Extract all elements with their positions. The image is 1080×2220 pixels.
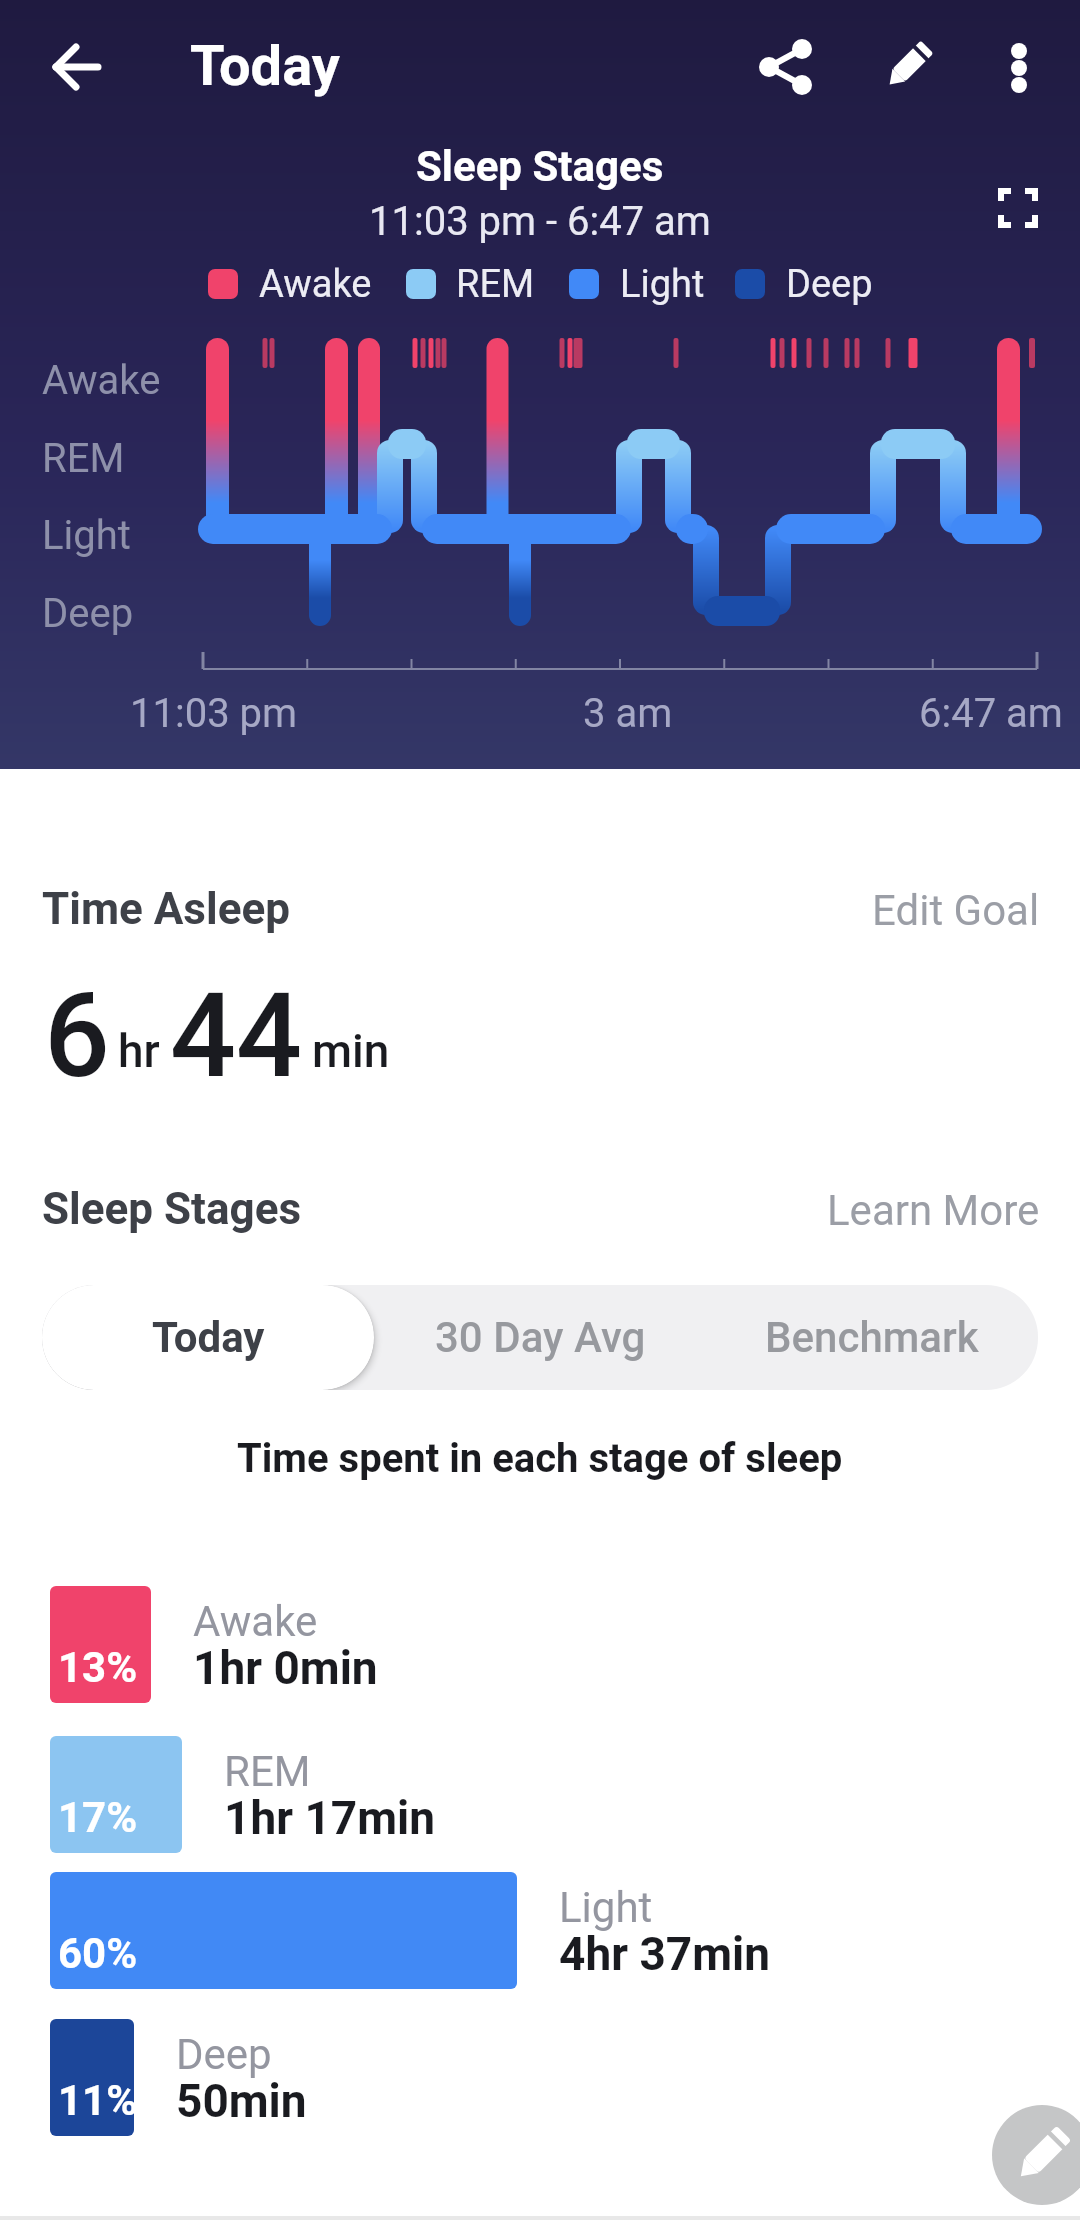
button[interactable] [990,40,1046,96]
staticText: Today [152,1313,265,1362]
staticText: 1hr 0min [193,1641,378,1695]
button[interactable]: 30 Day Avg [374,1285,706,1390]
button[interactable] [40,40,96,96]
staticText: REM [456,262,535,307]
staticText: Time Asleep [42,883,290,935]
button[interactable]: Edit Goal [760,880,1040,940]
staticText: Awake [259,262,372,307]
staticText: min [312,1024,390,1078]
staticText: 11:03 pm - 6:47 am [369,198,711,245]
staticText: 50min [176,2074,307,2128]
staticText: 17% [58,1793,138,1842]
staticText: Light [42,512,131,559]
staticText: REM [224,1747,311,1796]
staticText: 60% [58,1929,138,1978]
staticText: Benchmark [765,1313,979,1362]
staticText: Learn More [827,1186,1040,1235]
staticText: 13% [58,1643,138,1692]
staticText: Sleep Stages [416,142,664,191]
staticText: 3 am [583,690,673,737]
staticText: Deep [42,590,134,637]
button[interactable] [880,40,936,96]
staticText: 11% [58,2076,138,2125]
staticText: 6:47 am [919,690,1063,737]
button[interactable] [992,2105,1080,2205]
staticText: Today [190,33,340,99]
staticText: Edit Goal [872,886,1040,935]
button[interactable] [985,178,1045,238]
staticText: Time spent in each stage of sleep [237,1435,843,1482]
staticText: 44 [170,968,302,1088]
staticText: 11:03 pm [130,690,298,737]
staticText: 30 Day Avg [435,1313,646,1362]
staticText: 4hr 37min [559,1927,770,1981]
staticText: hr [118,1024,160,1078]
button[interactable]: Today [42,1285,374,1390]
button[interactable] [758,40,814,96]
staticText: Light [559,1883,653,1932]
staticText: Awake [42,357,161,404]
staticText: Deep [176,2030,272,2079]
staticText: Light [620,262,705,307]
staticText: Deep [786,262,873,307]
staticText: Sleep Stages [42,1183,302,1235]
staticText: 6 [44,968,110,1088]
button[interactable]: Benchmark [706,1285,1038,1390]
staticText: REM [42,435,125,482]
button[interactable]: Learn More [700,1180,1040,1240]
staticText: Awake [193,1597,318,1646]
staticText: 1hr 17min [224,1791,435,1845]
